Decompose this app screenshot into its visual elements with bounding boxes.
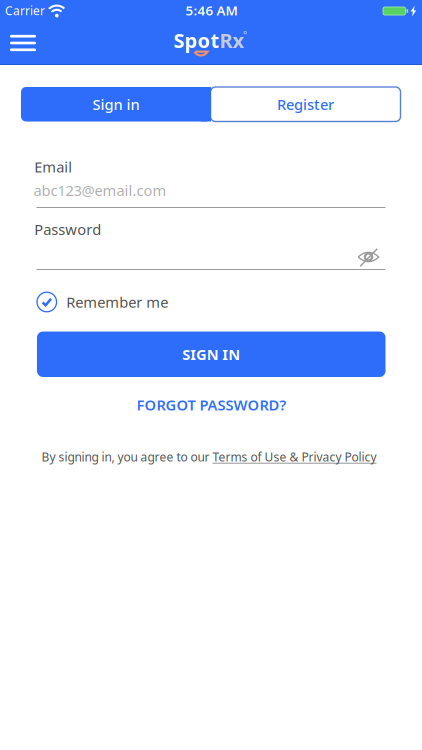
staticText: SIGN IN bbox=[182, 344, 240, 364]
staticText: Remember me bbox=[66, 292, 168, 312]
staticText: abc123@email.com bbox=[33, 180, 166, 200]
staticText: Rx bbox=[219, 27, 244, 54]
staticText: Password bbox=[34, 219, 101, 239]
staticText: Spot bbox=[173, 27, 219, 54]
staticText: 5:46 AM bbox=[185, 1, 237, 19]
button[interactable]: SIGN IN bbox=[37, 331, 385, 377]
button[interactable]: Sign in bbox=[21, 87, 211, 121]
button[interactable]: Menu bbox=[0, 23, 46, 63]
staticText: Register bbox=[277, 94, 334, 114]
staticText: Email bbox=[34, 157, 72, 176]
staticText: By signing in, you agree to our Terms of… bbox=[41, 449, 376, 465]
staticText: Carrier bbox=[5, 3, 45, 19]
button[interactable]: Register bbox=[210, 87, 400, 121]
staticText: FORGOT PASSWORD? bbox=[136, 395, 286, 414]
staticText: Sign in bbox=[92, 94, 139, 114]
button[interactable]: By signing in, you agree to our Terms of… bbox=[0, 449, 420, 465]
button[interactable]: FORGOT PASSWORD? bbox=[0, 395, 422, 414]
button[interactable]: Show password bbox=[350, 241, 386, 273]
button[interactable]: Remember me bbox=[36, 287, 168, 317]
